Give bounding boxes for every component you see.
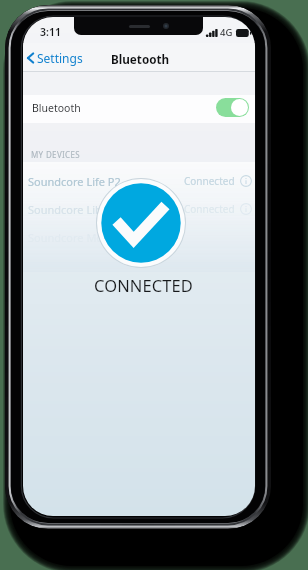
staticText: MY DEVICES <box>31 149 81 160</box>
button[interactable]: Soundcore Life P2 <box>23 167 255 195</box>
staticText: Connected <box>184 202 235 216</box>
staticText: Bluetooth <box>111 51 170 67</box>
staticText: Soundcore Life P2 <box>28 174 121 189</box>
button[interactable]: Bluetooth <box>23 95 255 123</box>
button[interactable]: Soundcore Motion <box>23 223 255 251</box>
other: Device info <box>240 203 252 215</box>
other: Device info <box>240 175 252 187</box>
staticText: Settings <box>37 50 83 66</box>
staticText: Connected <box>184 174 235 188</box>
staticText: Bluetooth <box>32 101 81 115</box>
staticText: 3:11 <box>40 25 61 39</box>
button[interactable]: Soundcore Liberty <box>23 195 255 223</box>
staticText: 4G <box>220 26 233 39</box>
staticText: CONNECTED <box>94 274 193 296</box>
button[interactable]: Settings <box>25 50 83 66</box>
staticText: Soundcore Liberty <box>28 202 123 217</box>
button[interactable] <box>216 98 249 117</box>
staticText: Soundcore Motion <box>28 230 124 245</box>
